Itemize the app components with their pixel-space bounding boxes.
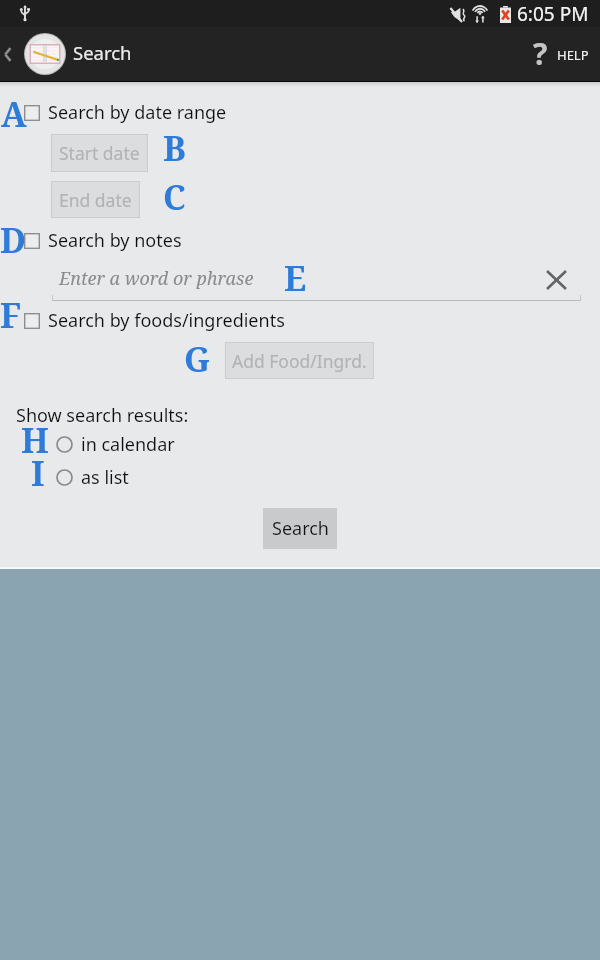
staticText: Search by notes xyxy=(48,228,182,253)
staticText: Search by foods/ingredients xyxy=(48,308,285,333)
staticText: A xyxy=(1,91,27,137)
staticText: C xyxy=(163,174,186,220)
staticText: HELP xyxy=(557,46,589,64)
button[interactable]: Search by notes xyxy=(24,228,182,253)
button[interactable]: Add Food/Ingrd. xyxy=(225,342,374,379)
staticText: E xyxy=(284,255,307,301)
staticText: Start date xyxy=(59,141,140,165)
staticText: Search by date range xyxy=(48,100,227,125)
staticText: G xyxy=(184,336,211,382)
staticText: Search xyxy=(73,40,132,65)
button[interactable]: Clear text xyxy=(542,266,570,294)
button[interactable]: as list xyxy=(56,465,129,490)
staticText: Enter a word or phrase xyxy=(59,266,254,291)
button[interactable]: in calendar xyxy=(56,432,175,457)
staticText: in calendar xyxy=(81,432,175,457)
button[interactable]: Navigate up xyxy=(0,27,132,81)
button[interactable]: Search by foods/ingredients xyxy=(24,308,285,333)
button[interactable]: ? xyxy=(521,34,600,75)
staticText: F xyxy=(0,292,22,338)
staticText: Add Food/Ingrd. xyxy=(232,349,367,373)
staticText: as list xyxy=(81,465,129,490)
staticText: I xyxy=(31,450,45,496)
staticText: H xyxy=(21,417,49,463)
button[interactable]: Search xyxy=(263,508,337,549)
button[interactable]: Search by date range xyxy=(24,100,227,125)
staticText: Show search results: xyxy=(16,403,189,428)
staticText: 6:05 PM xyxy=(517,1,589,27)
button[interactable]: Start date xyxy=(51,134,148,172)
button[interactable]: End date xyxy=(51,181,140,218)
staticText: ? xyxy=(533,33,548,74)
staticText: End date xyxy=(59,188,132,212)
staticText: B xyxy=(163,125,186,171)
staticText: D xyxy=(0,217,27,263)
other: Navigate up xyxy=(0,27,24,81)
staticText: Search xyxy=(272,516,329,541)
